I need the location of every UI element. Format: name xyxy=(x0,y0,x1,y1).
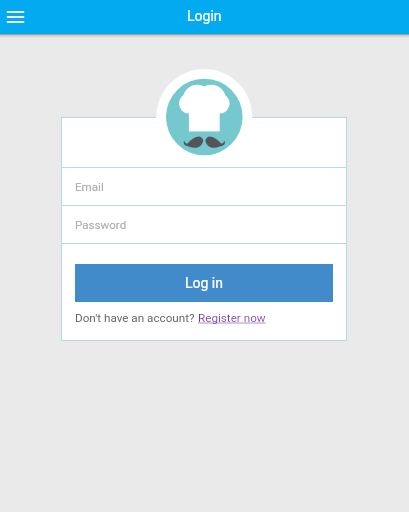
button[interactable]: Email xyxy=(61,168,347,205)
button[interactable]: Open navigation menu xyxy=(0,0,32,34)
button[interactable]: Log in xyxy=(75,264,333,302)
staticText: Email xyxy=(75,180,104,194)
staticText: Password xyxy=(75,218,127,232)
button[interactable]: Register now xyxy=(198,311,266,325)
staticText: Don't have an account? xyxy=(75,311,195,325)
staticText: Login xyxy=(187,8,222,24)
staticText: Register now xyxy=(198,311,266,325)
staticText: Log in xyxy=(185,275,223,291)
button[interactable]: Password xyxy=(61,206,347,243)
